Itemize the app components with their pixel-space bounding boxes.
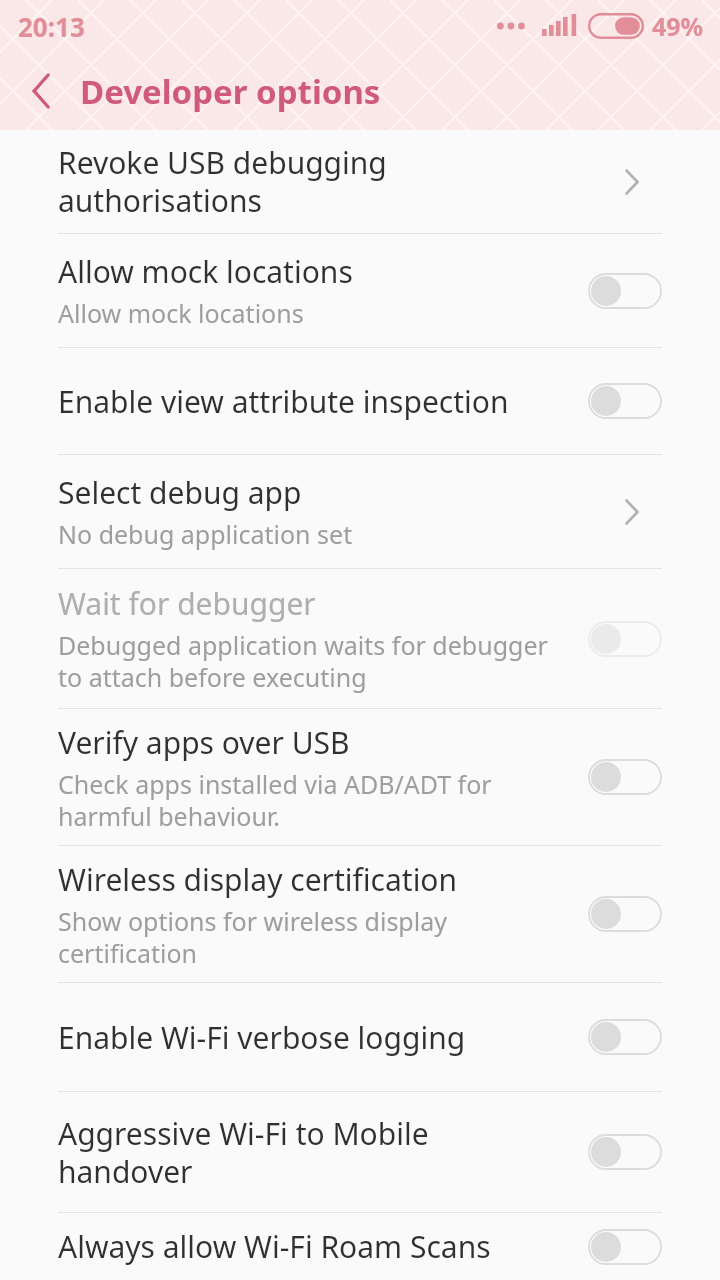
button[interactable]: Enable view attribute inspection <box>0 348 720 454</box>
staticText: Allow mock locations <box>58 251 353 292</box>
staticText: 49% <box>652 9 704 43</box>
button[interactable]: Toggle <box>588 759 662 795</box>
button[interactable]: Toggle <box>588 383 662 419</box>
button[interactable]: Verify apps over USB <box>0 709 720 845</box>
button[interactable]: Toggle <box>588 896 662 932</box>
staticText: Enable Wi-Fi verbose logging <box>58 1017 466 1058</box>
button[interactable]: Aggressive Wi-Fi to Mobile handover <box>0 1092 720 1212</box>
button[interactable]: Always allow Wi-Fi Roam Scans <box>0 1213 720 1280</box>
button[interactable]: Select debug app <box>0 455 720 568</box>
staticText: Debugged application waits for debugger … <box>58 628 548 694</box>
button[interactable]: Toggle <box>588 1019 662 1055</box>
button[interactable]: Toggle <box>588 1229 662 1265</box>
staticText: Wireless display certification <box>58 859 458 900</box>
button[interactable]: Revoke USB debugging authorisations <box>0 130 720 233</box>
button[interactable]: Toggle <box>588 1134 662 1170</box>
staticText: Enable view attribute inspection <box>58 381 509 422</box>
button[interactable]: Toggle <box>588 273 662 309</box>
staticText: Wait for debugger <box>58 583 316 624</box>
staticText: Developer options <box>80 69 381 114</box>
staticText: 20:13 <box>18 9 85 44</box>
staticText: Show options for wireless display certif… <box>58 904 447 970</box>
button[interactable]: Enable Wi-Fi verbose logging <box>0 983 720 1091</box>
staticText: Verify apps over USB <box>58 722 350 763</box>
button[interactable]: Toggle <box>588 621 662 657</box>
button[interactable]: Back <box>14 63 70 119</box>
staticText: Revoke USB debugging authorisations <box>58 142 598 221</box>
button[interactable]: Wait for debugger <box>0 569 720 708</box>
staticText: Always allow Wi-Fi Roam Scans <box>58 1226 491 1267</box>
button[interactable]: Wireless display certification <box>0 846 720 982</box>
staticText: Aggressive Wi-Fi to Mobile handover <box>58 1113 429 1192</box>
staticText: Check apps installed via ADB/ADT for har… <box>58 767 492 833</box>
staticText: Allow mock locations <box>58 296 304 330</box>
staticText: No debug application set <box>58 517 353 551</box>
staticText: Select debug app <box>58 472 302 513</box>
button[interactable]: Allow mock locations <box>0 234 720 347</box>
